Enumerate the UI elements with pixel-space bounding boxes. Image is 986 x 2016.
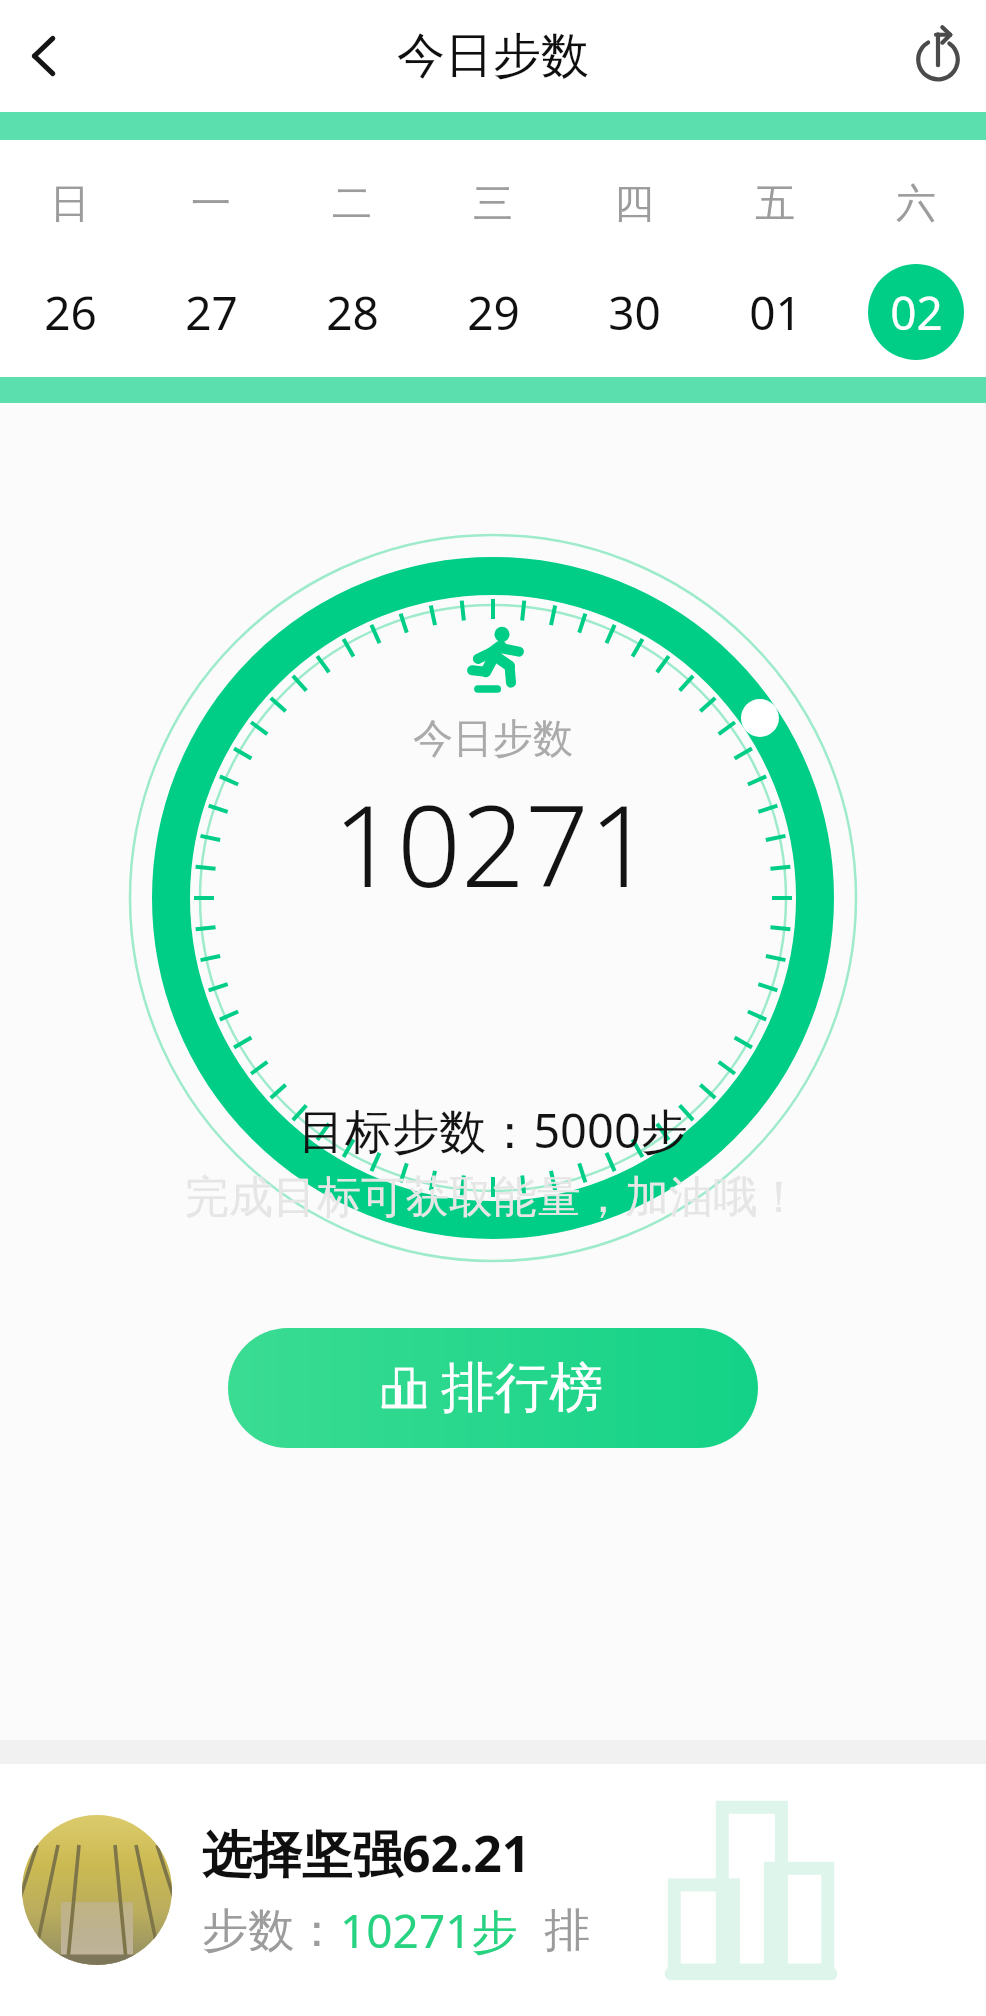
staticText: 10271 xyxy=(333,767,653,920)
button[interactable]: 一 xyxy=(140,168,281,360)
staticText: 今日步数 xyxy=(397,26,589,86)
button[interactable]: 排行榜 xyxy=(228,1328,758,1448)
staticText: 30 xyxy=(608,281,661,344)
staticText: 10271步 xyxy=(340,1899,518,1962)
staticText: 27 xyxy=(185,281,238,344)
staticText: 完成目标可获取能量，加油哦！ xyxy=(185,1170,801,1225)
staticText: 26 xyxy=(44,281,97,344)
button[interactable]: 选择坚强62.21 xyxy=(0,1764,986,2016)
button[interactable]: 二 xyxy=(281,168,422,360)
staticText: 28 xyxy=(326,281,379,344)
staticText: 步数： xyxy=(202,1902,340,1960)
staticText: 一 xyxy=(191,178,231,228)
staticText: 排 xyxy=(544,1902,590,1960)
staticText: 五 xyxy=(755,178,795,228)
staticText: 六 xyxy=(896,178,936,228)
staticText: 三 xyxy=(473,178,513,228)
button[interactable]: 三 xyxy=(422,168,563,360)
button[interactable]: Back xyxy=(0,12,88,100)
staticText: 二 xyxy=(332,178,372,228)
button[interactable]: 四 xyxy=(563,168,704,360)
button[interactable]: Share xyxy=(890,8,986,104)
button[interactable]: 日 xyxy=(0,168,140,360)
staticText: 今日步数 xyxy=(413,713,573,763)
staticText: 01 xyxy=(749,281,802,344)
staticText: 排行榜 xyxy=(441,1354,603,1422)
staticText: 四 xyxy=(614,178,654,228)
staticText: 目标步数：5000步 xyxy=(298,1098,688,1162)
staticText: 29 xyxy=(467,281,520,344)
staticText: 02 xyxy=(890,281,943,344)
button[interactable]: 五 xyxy=(704,168,845,360)
staticText: 选择坚强62.21 xyxy=(202,1819,531,1887)
staticText: 日 xyxy=(50,178,90,228)
button[interactable]: 六 xyxy=(845,168,986,360)
